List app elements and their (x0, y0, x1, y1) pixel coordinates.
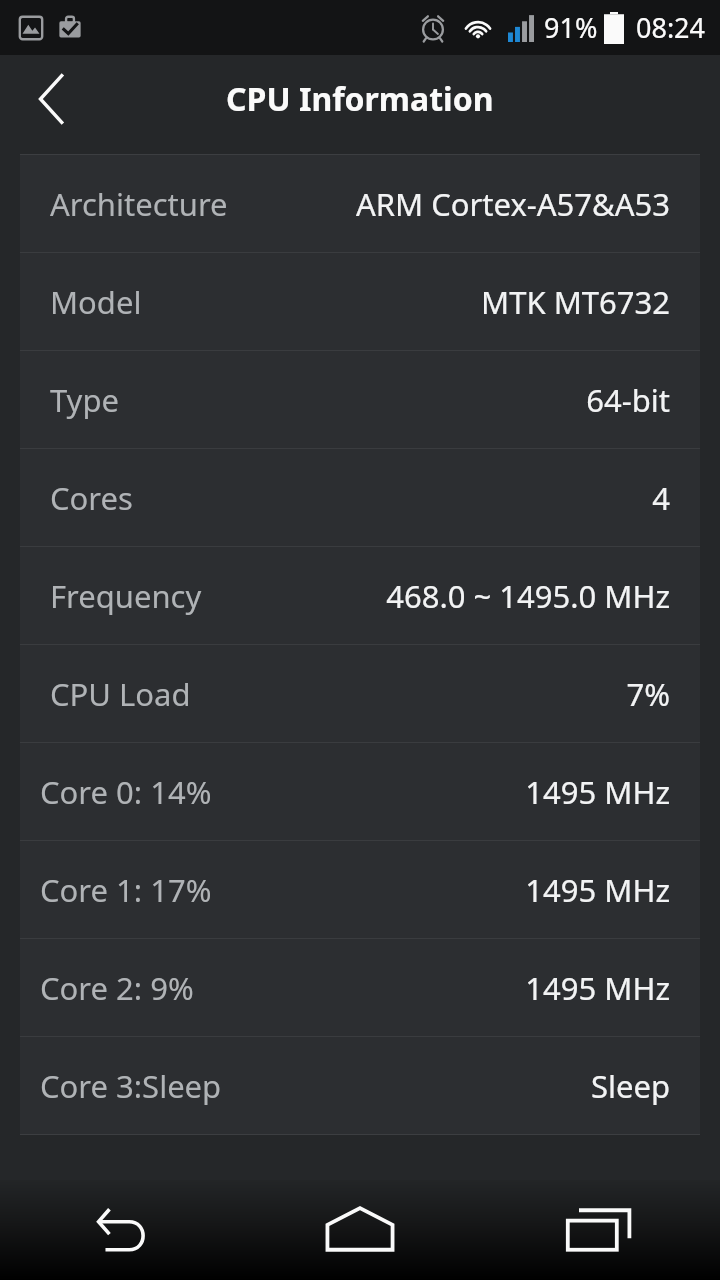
staticText: Core 0: 14% (40, 771, 212, 813)
button[interactable]: Recent apps (480, 1180, 720, 1280)
staticText: Core 1: 17% (40, 869, 212, 911)
staticText: 7% (626, 673, 670, 715)
staticText: Core 2: 9% (40, 967, 194, 1009)
button[interactable]: Home (240, 1180, 480, 1280)
staticText: Architecture (50, 183, 228, 225)
staticText: 468.0 ~ 1495.0 MHz (386, 575, 670, 617)
staticText: 1495 MHz (525, 771, 670, 813)
staticText: Sleep (590, 1065, 670, 1107)
button[interactable]: Frequency (20, 547, 700, 644)
button[interactable]: Model (20, 253, 700, 350)
staticText: MTK MT6732 (481, 281, 670, 323)
staticText: Type (50, 379, 119, 421)
staticText: Cores (50, 477, 133, 519)
staticText: Model (50, 281, 142, 323)
staticText: 1495 MHz (525, 967, 670, 1009)
button[interactable]: CPU Load (20, 645, 700, 742)
staticText: 64-bit (586, 379, 670, 421)
staticText: CPU Load (50, 673, 191, 715)
staticText: Frequency (50, 575, 202, 617)
button[interactable]: Back (0, 1180, 240, 1280)
staticText: 4 (652, 477, 670, 519)
button[interactable]: Back (0, 55, 104, 143)
button[interactable]: Architecture (20, 155, 700, 252)
staticText: Core 3:Sleep (40, 1065, 222, 1107)
staticText: ARM Cortex-A57&A53 (355, 183, 670, 225)
button[interactable]: Core 3:Sleep (20, 1037, 700, 1134)
staticText: 1495 MHz (525, 869, 670, 911)
staticText: 08:24 (636, 9, 706, 46)
button[interactable]: Cores (20, 449, 700, 546)
button[interactable]: Type (20, 351, 700, 448)
staticText: CPU Information (226, 77, 494, 121)
staticText: 91% (544, 9, 598, 46)
button[interactable]: Core 1: 17% (20, 841, 700, 938)
button[interactable]: Core 0: 14% (20, 743, 700, 840)
button[interactable]: Core 2: 9% (20, 939, 700, 1036)
